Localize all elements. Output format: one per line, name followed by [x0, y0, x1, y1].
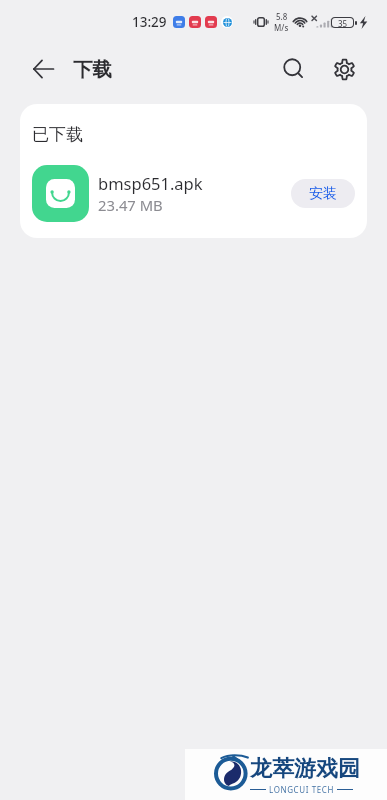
- button[interactable]: Settings: [327, 52, 361, 86]
- staticText: M/s: [274, 22, 289, 33]
- staticText: 35: [338, 18, 348, 27]
- staticText: 23.47 MB: [98, 195, 163, 215]
- button[interactable]: Search: [277, 52, 311, 86]
- staticText: 安装: [309, 185, 337, 203]
- staticText: 龙萃游戏园: [250, 755, 360, 783]
- button[interactable]: Back: [32, 50, 54, 88]
- staticText: LONGCUI TECH: [269, 784, 334, 795]
- button[interactable]: bmsp651.apk: [20, 165, 367, 222]
- staticText: 13:29: [132, 13, 167, 31]
- staticText: 5.8: [276, 11, 288, 22]
- staticText: bmsp651.apk: [98, 172, 203, 194]
- staticText: 已下载: [32, 124, 83, 145]
- button[interactable]: 安装: [291, 179, 355, 208]
- staticText: 下载: [73, 57, 112, 82]
